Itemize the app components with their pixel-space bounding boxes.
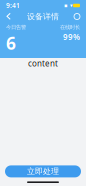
button[interactable]: Back <box>3 11 15 21</box>
staticText: content <box>28 58 58 69</box>
staticText: ▪ ▾ <box>64 2 73 9</box>
staticText: 6 <box>6 32 16 55</box>
staticText: 9:41 <box>6 1 20 10</box>
button[interactable]: Refresh <box>71 11 83 21</box>
button[interactable]: 立即处理 <box>5 165 81 177</box>
staticText: 立即处理 <box>27 166 59 176</box>
staticText: 设备详情 <box>27 12 59 21</box>
staticText: 今日告警 <box>6 24 26 31</box>
staticText: 在线时长 <box>60 24 80 31</box>
staticText: 99% <box>63 32 80 42</box>
